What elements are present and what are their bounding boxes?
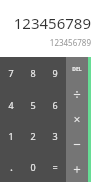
- button[interactable]: Multiply: [66, 107, 88, 132]
- button[interactable]: DEL: [66, 57, 88, 82]
- button[interactable]: 3: [44, 120, 66, 151]
- staticText: 9: [52, 67, 58, 79]
- staticText: DEL: [72, 66, 82, 73]
- staticText: 2: [30, 130, 36, 142]
- button[interactable]: 7: [0, 57, 22, 89]
- button[interactable]: 9: [44, 57, 66, 89]
- staticText: 1: [8, 130, 14, 142]
- button[interactable]: 8: [22, 57, 44, 89]
- staticText: 4: [8, 99, 14, 111]
- staticText: 8: [30, 67, 36, 79]
- button[interactable]: =: [44, 151, 66, 182]
- button[interactable]: Plus: [66, 157, 88, 182]
- button[interactable]: 5: [22, 89, 44, 120]
- button[interactable]: 6: [44, 89, 66, 120]
- staticText: .: [10, 159, 13, 174]
- staticText: 123456789: [49, 37, 91, 48]
- button[interactable]: 2: [22, 120, 44, 151]
- button[interactable]: 1: [0, 120, 22, 151]
- button[interactable]: Divide: [66, 82, 88, 107]
- staticText: 6: [52, 99, 58, 111]
- button[interactable]: 4: [0, 89, 22, 120]
- staticText: 123456789: [13, 13, 91, 33]
- staticText: =: [52, 161, 58, 173]
- staticText: 7: [8, 67, 14, 79]
- staticText: 3: [52, 130, 58, 142]
- staticText: 5: [30, 99, 36, 111]
- staticText: 0: [30, 161, 36, 173]
- button[interactable]: .: [0, 151, 22, 182]
- button[interactable]: 0: [22, 151, 44, 182]
- button[interactable]: Minus: [66, 132, 88, 157]
